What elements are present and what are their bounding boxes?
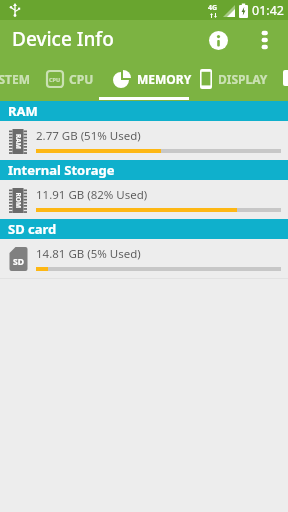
staticText: DISPLAY xyxy=(218,71,268,87)
staticText: 4G xyxy=(208,3,218,13)
button[interactable] xyxy=(206,28,231,53)
button[interactable] xyxy=(252,27,277,52)
button[interactable]: ROM xyxy=(0,180,288,219)
staticText: SD xyxy=(13,256,24,268)
button[interactable]: RAM xyxy=(0,121,288,160)
button[interactable]: MEMORY xyxy=(109,58,196,100)
staticText: RAM xyxy=(8,102,38,120)
staticText: MEMORY xyxy=(137,71,192,87)
staticText: RAM xyxy=(14,134,23,149)
button[interactable]: DISPLAY xyxy=(195,58,272,100)
staticText: CPU xyxy=(49,76,61,83)
staticText: Internal Storage xyxy=(8,161,115,179)
button[interactable]: SD xyxy=(0,239,288,278)
staticText: YSTEM xyxy=(0,71,31,87)
staticText: SD card xyxy=(8,220,57,238)
staticText: CPU xyxy=(69,71,94,87)
button[interactable]: YSTEM xyxy=(0,58,46,100)
staticText: 14.81 GB (5% Used) xyxy=(36,246,141,262)
staticText: Device Info xyxy=(12,26,114,52)
button[interactable]: CPU xyxy=(42,58,98,100)
staticText: ROM xyxy=(13,192,22,208)
staticText: 11.91 GB (82% Used) xyxy=(36,187,148,203)
staticText: 2.77 GB (51% Used) xyxy=(36,128,141,144)
staticText: 01:42 xyxy=(252,2,284,19)
